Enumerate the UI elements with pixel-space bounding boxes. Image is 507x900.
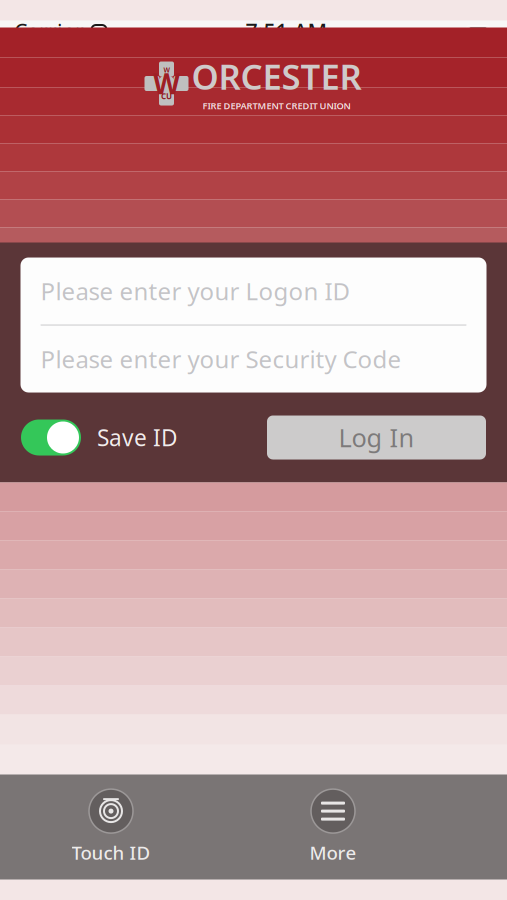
staticText: Save ID (97, 422, 178, 452)
staticText: W (153, 65, 180, 102)
staticText: Please enter your Security Code (40, 343, 401, 375)
staticText: Carrier (14, 17, 84, 46)
button[interactable]: Save ID (21, 419, 178, 455)
staticText: W (163, 65, 169, 74)
staticText: ORCESTER (191, 53, 361, 99)
staticText: FIRE DEPARTMENT CREDIT UNION (202, 99, 350, 112)
staticText: CU (161, 91, 172, 101)
staticText: More (309, 840, 356, 865)
staticText: Touch ID (71, 840, 150, 865)
button[interactable]: Log In (267, 415, 486, 459)
button[interactable]: More (285, 784, 381, 870)
staticText: Please enter your Logon ID (40, 275, 350, 307)
button[interactable]: Please enter your Security Code (20, 325, 486, 392)
button[interactable]: Touch ID (63, 784, 159, 870)
staticText: 7:51 AM (245, 17, 327, 46)
staticText: Log In (338, 421, 414, 454)
button[interactable]: Please enter your Logon ID (20, 257, 486, 324)
